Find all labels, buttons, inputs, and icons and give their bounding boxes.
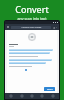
button[interactable]: Crop — [7, 93, 15, 99]
staticText: Convert — [0, 3, 64, 15]
button[interactable]: Rotate — [18, 93, 26, 99]
staticText: Carbon Scan Folder — [21, 26, 42, 29]
button[interactable]: Back — [6, 25, 10, 29]
button[interactable]: Share — [52, 26, 55, 29]
button[interactable]: Text — [28, 93, 36, 99]
button[interactable]: Filter — [38, 93, 46, 99]
button[interactable]: Carbon Scan Folder — [11, 26, 51, 29]
button[interactable]: Convert — [0, 3, 64, 15]
staticText: any scan into text — [0, 16, 64, 21]
button[interactable]: More options — [55, 26, 58, 29]
button[interactable]: COPY — [44, 87, 55, 91]
button[interactable]: Save — [49, 93, 57, 99]
staticText: COPY — [47, 88, 53, 91]
